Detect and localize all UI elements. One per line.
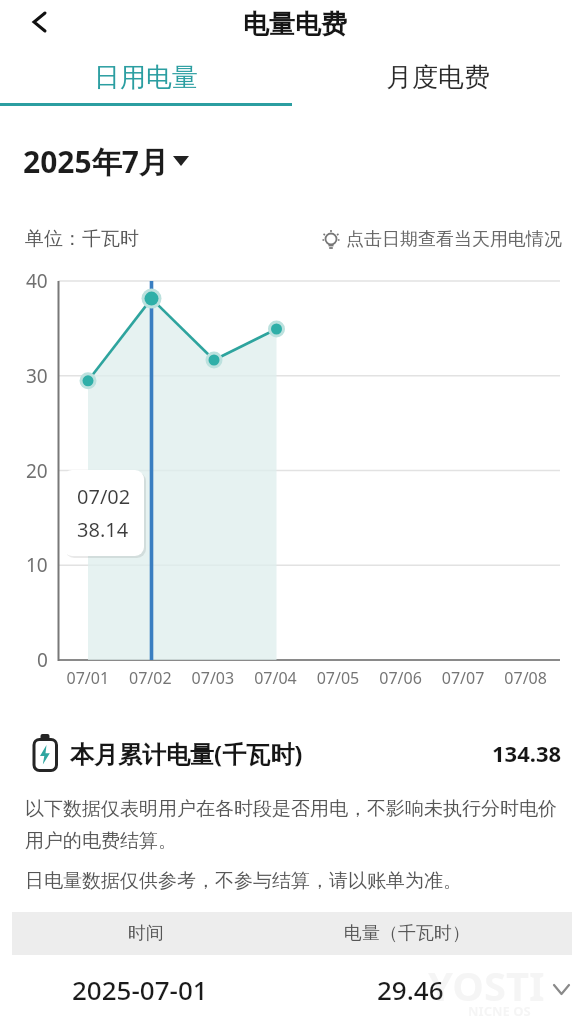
button[interactable]: 2025-07-01 xyxy=(12,960,572,1018)
button[interactable] xyxy=(22,5,56,39)
staticText: 本月累计电量(千瓦时) xyxy=(70,737,303,770)
staticText: 电量电费 xyxy=(243,8,347,41)
button[interactable]: 2025年7月 xyxy=(23,140,189,182)
button[interactable]: 月度电费 xyxy=(292,44,584,106)
button[interactable]: 本月累计电量(千瓦时) xyxy=(32,724,562,782)
staticText: 2025年7月 xyxy=(23,141,169,182)
button[interactable]: 日用电量 xyxy=(0,44,292,106)
staticText: 日用电量 xyxy=(94,61,198,94)
staticText: NICNE OS xyxy=(468,1002,531,1020)
staticText: YOSTI xyxy=(428,958,545,1012)
staticText: 月度电费 xyxy=(386,61,490,94)
staticText: 29.46 xyxy=(377,972,444,1007)
staticText: 时间 xyxy=(128,922,164,945)
staticText: 134.38 xyxy=(492,738,562,768)
staticText: 点击日期查看当天用电情况 xyxy=(346,228,562,251)
staticText: 以下数据仅表明用户在各时段是否用电，不影响未执行分时电价用户的电费结算。 xyxy=(25,797,565,853)
staticText: 2025-07-01 xyxy=(72,972,208,1007)
staticText: 电量（千瓦时） xyxy=(344,922,470,945)
staticText: 单位：千瓦时 xyxy=(25,227,139,251)
staticText: 日电量数据仅供参考，不参与结算，请以账单为准。 xyxy=(25,869,462,893)
